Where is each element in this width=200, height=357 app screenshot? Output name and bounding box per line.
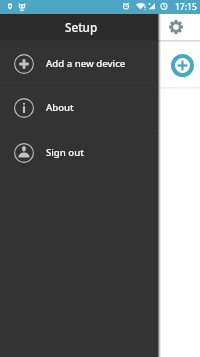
button[interactable]: Add xyxy=(169,52,195,78)
button[interactable]: Add a new device xyxy=(0,41,158,86)
staticText: Setup xyxy=(65,19,98,35)
button[interactable]: About xyxy=(0,85,158,130)
staticText: About xyxy=(46,101,74,114)
staticText: 17:15 xyxy=(175,1,197,13)
button[interactable]: Sign out xyxy=(0,130,158,175)
staticText: Sign out xyxy=(46,146,84,159)
staticText: Add a new device xyxy=(46,57,126,70)
button[interactable]: Settings xyxy=(166,17,186,37)
